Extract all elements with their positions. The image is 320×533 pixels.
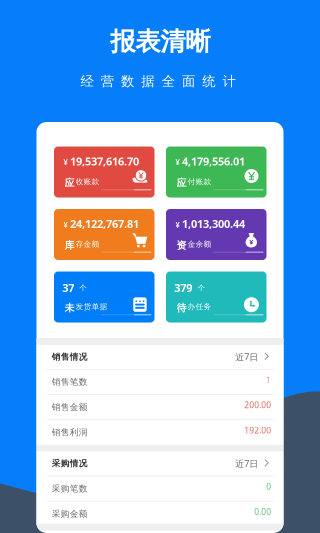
staticText: 未 (64, 301, 74, 314)
staticText: 24,122,767.81 (70, 216, 139, 231)
staticText: ¥ (63, 156, 68, 168)
staticText: 应 (176, 176, 186, 189)
button[interactable]: 37 (54, 271, 154, 322)
staticText: 19,537,616.70 (70, 154, 139, 169)
staticText: 应 (64, 176, 74, 189)
staticText: ¥ (63, 219, 68, 230)
button[interactable]: 销售情况 (36, 345, 283, 369)
staticText: 0 (266, 481, 271, 492)
staticText: 存金额 (75, 239, 99, 249)
staticText: 收账款 (75, 177, 99, 187)
button[interactable]: 379 (166, 271, 266, 322)
staticText: 销售笔数 (52, 376, 88, 387)
staticText: 库 (64, 239, 74, 252)
staticText: 近7日 (235, 457, 258, 470)
staticText: 经营数据全面统计 (80, 73, 236, 90)
staticText: 0.00 (254, 506, 271, 517)
staticText: 办任务 (187, 302, 211, 312)
staticText: 4,179,556.01 (182, 154, 245, 169)
staticText: 1 (266, 374, 271, 386)
staticText: 个 (197, 283, 204, 293)
button[interactable]: 采购情况 (36, 452, 283, 476)
button[interactable]: ¥ (54, 209, 154, 260)
button[interactable]: ¥ (166, 209, 266, 260)
staticText: 发货单据 (75, 302, 107, 312)
staticText: 采购金额 (52, 508, 88, 519)
staticText: 379 (174, 280, 192, 295)
button[interactable]: ¥ (54, 146, 154, 197)
button[interactable]: ¥ (166, 146, 266, 197)
staticText: ¥ (175, 219, 180, 230)
staticText: 付账款 (187, 177, 211, 187)
staticText: 37 (62, 280, 74, 295)
staticText: 200.00 (244, 399, 271, 411)
staticText: 192.00 (244, 425, 271, 436)
staticText: 资 (176, 239, 186, 252)
staticText: 金余额 (187, 239, 211, 249)
staticText: 销售利润 (52, 427, 88, 438)
staticText: 报表清晰 (110, 26, 210, 57)
staticText: 个 (79, 283, 86, 293)
staticText: ¥ (175, 156, 180, 168)
staticText: 销售金额 (52, 402, 88, 413)
staticText: 采购情况 (52, 458, 88, 469)
staticText: 1,013,300.44 (182, 216, 245, 231)
staticText: 销售情况 (52, 351, 88, 362)
staticText: 待 (176, 301, 186, 314)
staticText: 采购笔数 (52, 483, 88, 494)
staticText: 近7日 (235, 351, 258, 363)
